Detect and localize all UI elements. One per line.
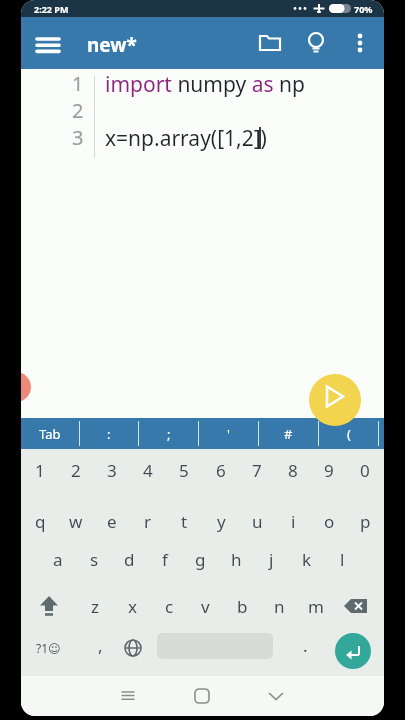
button[interactable] [340,23,380,63]
button[interactable]: p [347,500,383,542]
staticText: a [53,548,63,571]
staticText: d [124,548,135,571]
button[interactable] [182,676,222,716]
staticText: ' [227,425,230,443]
button[interactable]: Tab [21,418,79,449]
button[interactable] [250,23,290,63]
button[interactable]: 3 [94,449,130,491]
button[interactable] [115,627,151,669]
button[interactable]: e [94,500,130,542]
button[interactable]: y [203,500,239,542]
button[interactable]: # [259,418,318,449]
button[interactable]: n [261,585,297,627]
staticText: 6 [216,459,226,482]
button[interactable]: z [77,585,113,627]
button[interactable]: : [80,418,138,449]
button[interactable]: 0 [347,449,383,491]
staticText: o [324,510,335,533]
staticText: r [144,510,152,533]
staticText: 7 [252,459,262,482]
staticText: 1 [72,70,84,97]
staticText: v [201,595,210,618]
button[interactable]: g [182,538,218,580]
button[interactable]: f [147,538,183,580]
staticText: ?1☺ [36,640,61,656]
button[interactable]: b [224,585,260,627]
button[interactable] [338,585,374,627]
button[interactable]: ?1☺ [27,627,69,669]
staticText: g [195,548,206,571]
button[interactable] [28,25,68,65]
staticText: z [91,595,99,618]
button[interactable]: t [166,500,202,542]
button[interactable]: j [253,538,289,580]
staticText: 3 [107,459,117,482]
button[interactable]: d [111,538,147,580]
staticText: : [107,425,111,443]
button[interactable] [31,585,67,627]
button[interactable]: m [298,585,334,627]
button[interactable]: l [324,538,360,580]
staticText: ; [167,425,171,443]
button[interactable]: u [239,500,275,542]
staticText: u [252,510,263,533]
staticText: 8 [288,459,298,482]
staticText: b [237,595,248,618]
button[interactable]: ' [199,418,258,449]
button[interactable]: h [218,538,254,580]
button[interactable]: 7 [239,449,275,491]
button[interactable]: r [130,500,166,542]
button[interactable]: x [114,585,150,627]
staticText: 2 [72,97,84,124]
staticText: x [128,595,137,618]
button[interactable] [108,676,148,716]
button[interactable]: k [289,538,325,580]
staticText: 5 [179,459,189,482]
button[interactable] [309,374,361,426]
button[interactable]: 1 [22,449,58,491]
staticText: 3 [72,124,84,151]
staticText: m [308,595,324,618]
staticText: e [107,510,117,533]
staticText: y [217,510,226,533]
staticText: 2:22 PM [34,3,69,15]
button[interactable]: . [287,624,323,666]
staticText: c [165,595,174,618]
button[interactable] [335,633,371,669]
staticText: i [291,510,296,533]
button[interactable]: 6 [203,449,239,491]
button[interactable] [256,676,296,716]
button[interactable]: s [76,538,112,580]
button[interactable]: c [151,585,187,627]
button[interactable]: i [275,500,311,542]
button[interactable]: ; [139,418,198,449]
button[interactable] [296,23,336,63]
button[interactable]: a [40,538,76,580]
button[interactable]: v [187,585,223,627]
staticText: w [69,510,83,533]
button[interactable]: 2 [58,449,94,491]
staticText: 0 [360,459,370,482]
button[interactable]: 9 [311,449,347,491]
staticText: 70% [354,3,373,15]
button[interactable]: 8 [275,449,311,491]
button[interactable]: o [311,500,347,542]
staticText: x=np.array([1,2]) [105,124,267,151]
staticText: k [302,548,312,571]
staticText: 2 [71,459,81,482]
button[interactable]: q [22,500,58,542]
staticText: . [303,634,308,657]
staticText: t [181,510,188,533]
button[interactable]: 4 [130,449,166,491]
staticText: Tab [39,425,61,443]
staticText: 9 [324,459,334,482]
button[interactable]: 5 [166,449,202,491]
button[interactable]: w [58,500,94,542]
staticText: h [231,548,242,571]
button[interactable]: ( [319,418,378,449]
staticText: # [284,425,293,443]
staticText: l [340,548,345,571]
button[interactable] [21,372,31,402]
button[interactable]: , [82,624,118,666]
